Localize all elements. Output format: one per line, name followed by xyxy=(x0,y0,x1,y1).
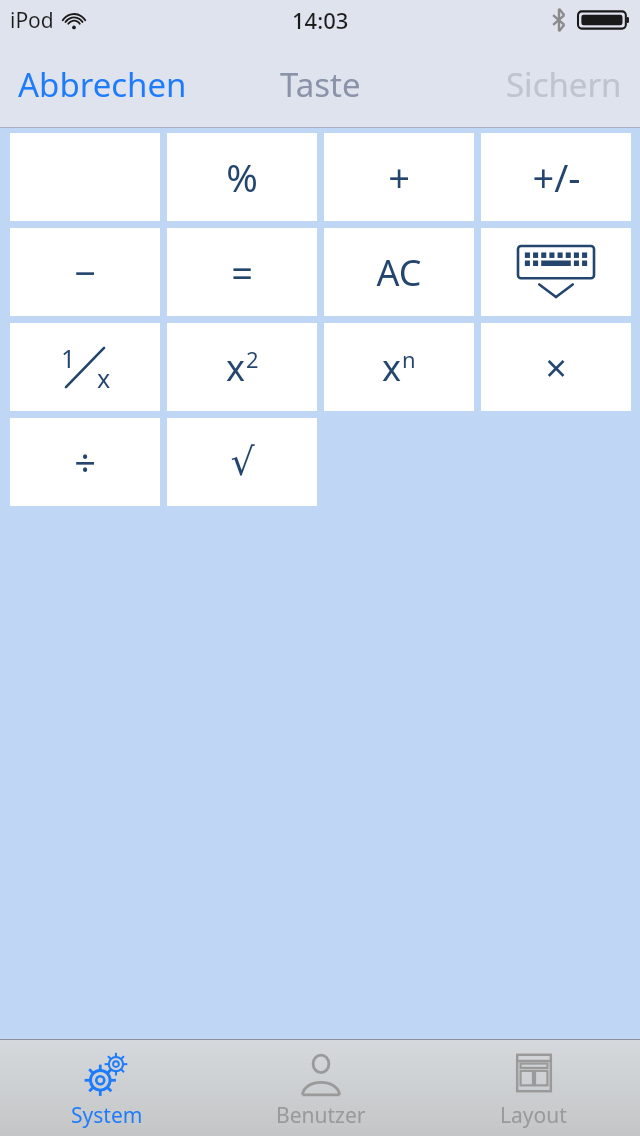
button[interactable]: x squared xyxy=(167,323,317,411)
staticText: 14:03 xyxy=(292,5,349,35)
staticText: ÷ xyxy=(74,436,96,488)
button[interactable]: × xyxy=(481,323,631,411)
staticText: = xyxy=(231,246,253,298)
button[interactable]: One over x xyxy=(10,323,160,411)
staticText: 2 xyxy=(246,344,259,374)
button[interactable]: Sichern xyxy=(488,52,640,117)
button[interactable]: ÷ xyxy=(10,418,160,506)
staticText: √ xyxy=(230,440,255,484)
staticText: iPod xyxy=(10,6,54,35)
button[interactable]: % xyxy=(167,133,317,221)
button[interactable]: AC xyxy=(324,228,474,316)
button[interactable]: Layout xyxy=(427,1040,640,1136)
staticText: 1 xyxy=(61,341,76,375)
staticText: Benutzer xyxy=(276,1101,366,1130)
button[interactable]: = xyxy=(167,228,317,316)
staticText: n xyxy=(402,344,416,374)
staticText: % xyxy=(226,151,258,203)
staticText: +/- xyxy=(532,151,581,203)
button[interactable]: x to the n xyxy=(324,323,474,411)
staticText: System xyxy=(71,1101,143,1130)
staticText: AC xyxy=(376,248,422,297)
staticText: − xyxy=(74,246,96,298)
button[interactable]: Hide keyboard xyxy=(481,228,631,316)
staticText: x xyxy=(226,343,246,392)
staticText: x xyxy=(382,343,402,392)
button[interactable]: System xyxy=(0,1040,214,1136)
staticText: Abbrechen xyxy=(18,62,187,107)
button[interactable]: Benutzer xyxy=(214,1040,427,1136)
button[interactable]: Abbrechen xyxy=(0,52,205,117)
staticText: Sichern xyxy=(506,62,622,107)
staticText: + xyxy=(388,151,410,203)
staticText: × xyxy=(545,341,567,393)
staticText: x xyxy=(97,361,111,395)
button[interactable]: √ xyxy=(167,418,317,506)
staticText: Taste xyxy=(280,62,361,107)
staticText: Layout xyxy=(500,1101,567,1130)
button[interactable]: + xyxy=(324,133,474,221)
button[interactable]: +/- xyxy=(481,133,631,221)
button[interactable]: − xyxy=(10,228,160,316)
